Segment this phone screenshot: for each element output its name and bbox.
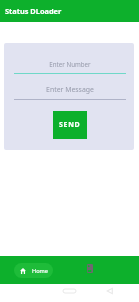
staticText: Status DLoader (5, 6, 62, 16)
staticText: Enter Number (14, 60, 126, 68)
button[interactable]: Enter Message (14, 79, 126, 100)
staticText: Enter Message (14, 85, 126, 94)
button[interactable]: Home gesture (57, 284, 82, 302)
staticText: Home (32, 267, 48, 275)
other: Home (20, 268, 26, 274)
button[interactable]: SEND (53, 111, 87, 139)
button[interactable]: Status (82, 260, 98, 276)
staticText: SEND (59, 120, 81, 130)
button[interactable]: Back (100, 284, 120, 302)
button[interactable]: Enter Number (14, 54, 126, 74)
button[interactable]: Home (14, 263, 53, 278)
